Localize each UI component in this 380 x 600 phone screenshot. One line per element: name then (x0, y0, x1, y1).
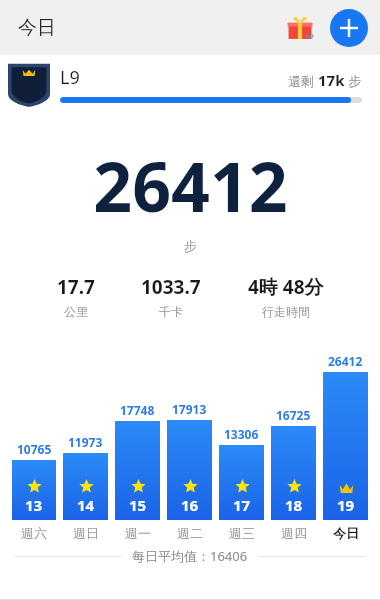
button[interactable]: 17.7 (53, 274, 99, 319)
staticText: 1033.7 (141, 274, 201, 300)
button[interactable]: 4時 48分 (244, 274, 328, 319)
button[interactable]: 13306 (219, 426, 264, 520)
button[interactable]: 1033.7 (137, 274, 205, 319)
staticText: 10765 (17, 441, 52, 457)
staticText: 19 (337, 495, 355, 515)
staticText: 週一 (125, 525, 151, 541)
button[interactable]: Gift reward advertisement (280, 8, 320, 48)
staticText: 16 (181, 495, 199, 515)
staticText: 17k (318, 70, 345, 90)
staticText: 行走時間 (262, 304, 310, 319)
staticText: 18 (285, 495, 303, 515)
button[interactable]: L9 (0, 55, 380, 113)
button[interactable]: 17748 (115, 402, 160, 520)
staticText: 17748 (120, 402, 155, 418)
staticText: 還剩 (288, 72, 318, 90)
button[interactable]: Add record (330, 9, 368, 47)
button[interactable]: 11973 (63, 434, 108, 520)
staticText: 步 (345, 72, 362, 90)
staticText: 每日平均值：16406 (132, 547, 248, 565)
staticText: 步 (184, 238, 197, 254)
staticText: 千卡 (159, 304, 183, 319)
button[interactable]: 17913 (167, 401, 212, 520)
staticText: 11973 (68, 434, 103, 450)
staticText: 今日 (18, 16, 56, 40)
staticText: 13306 (224, 426, 259, 442)
staticText: 15 (129, 495, 147, 515)
staticText: 16725 (276, 407, 311, 423)
staticText: 26412 (93, 139, 288, 232)
button[interactable]: 10765 (12, 441, 56, 520)
button[interactable]: 26412 (323, 353, 368, 520)
staticText: 13 (25, 495, 43, 515)
staticText: L9 (60, 65, 80, 90)
staticText: AD (305, 32, 314, 40)
staticText: 26412 (328, 353, 363, 369)
staticText: 週四 (281, 525, 307, 541)
staticText: 週日 (73, 525, 99, 541)
staticText: 17 (233, 495, 251, 515)
staticText: 14 (77, 495, 95, 515)
staticText: 17.7 (57, 274, 95, 300)
button[interactable]: 16725 (271, 407, 316, 520)
staticText: 週三 (229, 525, 255, 541)
staticText: 週六 (21, 525, 47, 541)
staticText: 今日 (333, 525, 359, 541)
staticText: 4時 48分 (248, 274, 324, 300)
staticText: 17913 (172, 401, 207, 417)
staticText: 週二 (177, 525, 203, 541)
staticText: 公里 (64, 304, 88, 319)
